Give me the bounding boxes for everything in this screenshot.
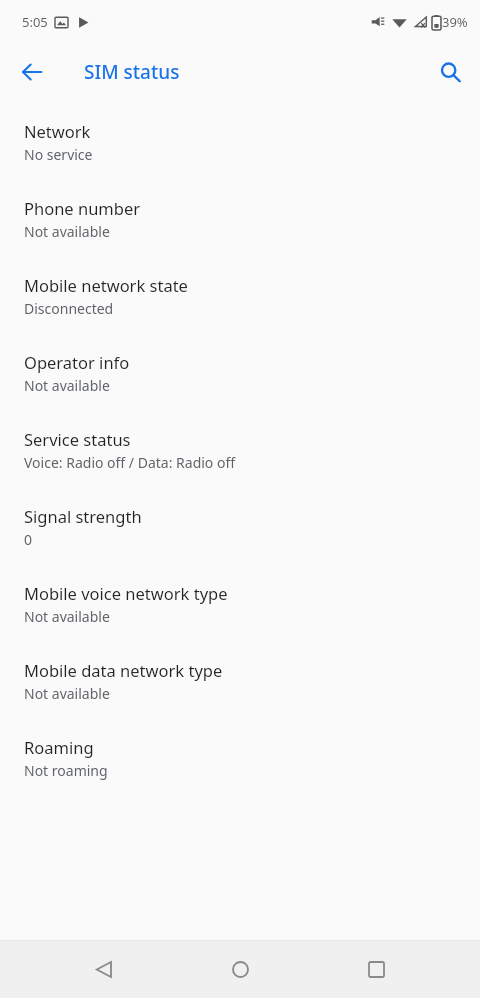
button[interactable]: Search bbox=[426, 48, 474, 96]
staticText: Roaming bbox=[24, 736, 94, 758]
staticText: 39% bbox=[442, 13, 468, 31]
staticText: Not roaming bbox=[24, 761, 108, 780]
button[interactable]: Home bbox=[208, 941, 272, 998]
staticText: Network bbox=[24, 120, 91, 142]
button[interactable]: Phone number bbox=[0, 187, 480, 264]
staticText: SIM status bbox=[84, 59, 180, 85]
staticText: 0 bbox=[24, 530, 33, 549]
staticText: No service bbox=[24, 145, 93, 164]
staticText: Service status bbox=[24, 428, 131, 450]
staticText: Operator info bbox=[24, 351, 130, 373]
staticText: Not available bbox=[24, 684, 110, 703]
button[interactable]: Roaming bbox=[0, 726, 480, 803]
staticText: Voice: Radio off / Data: Radio off bbox=[24, 453, 236, 472]
button[interactable]: Back bbox=[72, 941, 136, 998]
button[interactable]: Mobile voice network type bbox=[0, 572, 480, 649]
button[interactable]: Mobile network state bbox=[0, 264, 480, 341]
button[interactable]: Service status bbox=[0, 418, 480, 495]
staticText: Mobile data network type bbox=[24, 659, 223, 681]
staticText: Not available bbox=[24, 222, 110, 241]
button[interactable]: Signal strength bbox=[0, 495, 480, 572]
button[interactable]: Mobile data network type bbox=[0, 649, 480, 726]
button[interactable]: Network bbox=[0, 110, 480, 187]
button[interactable]: Operator info bbox=[0, 341, 480, 418]
button[interactable]: Recent apps bbox=[344, 941, 408, 998]
staticText: 5:05 bbox=[22, 13, 48, 31]
staticText: Disconnected bbox=[24, 299, 114, 318]
staticText: Mobile network state bbox=[24, 274, 188, 296]
staticText: Not available bbox=[24, 607, 110, 626]
staticText: Mobile voice network type bbox=[24, 582, 228, 604]
staticText: Not available bbox=[24, 376, 110, 395]
staticText: Phone number bbox=[24, 197, 141, 219]
button[interactable]: Back bbox=[10, 50, 54, 94]
staticText: Signal strength bbox=[24, 505, 142, 527]
